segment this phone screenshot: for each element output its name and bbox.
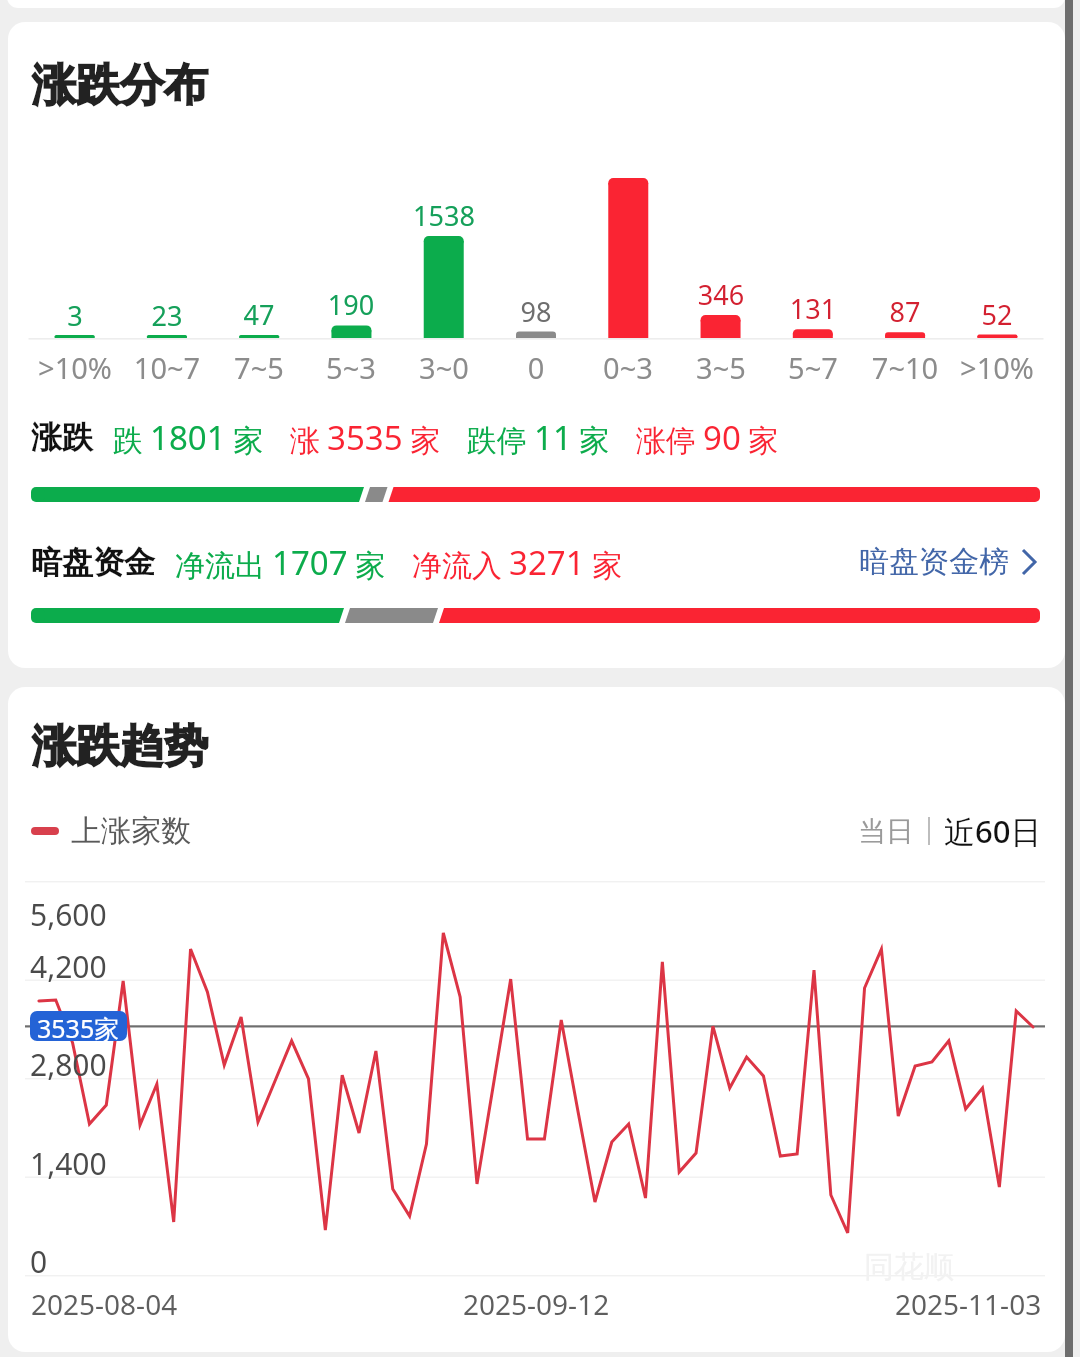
staticText: 23 — [107, 297, 227, 334]
staticText: 家 — [592, 547, 622, 585]
staticText: 同花顺 — [864, 1248, 954, 1286]
staticText: 涨停 — [636, 422, 696, 460]
staticText: 涨跌分布 — [32, 58, 208, 113]
staticText: 0 — [476, 348, 596, 387]
staticText: 90 — [703, 415, 741, 460]
staticText: 0 — [30, 1241, 48, 1282]
staticText: 涨跌 — [31, 418, 93, 457]
staticText: 家 — [355, 547, 385, 585]
staticText: 346 — [661, 276, 781, 313]
staticText: 1538 — [384, 197, 504, 234]
staticText: 暗盘资金 — [31, 543, 155, 582]
staticText: 11 — [534, 415, 572, 460]
staticText: 3535 — [327, 415, 403, 460]
staticText: 当日 — [858, 814, 914, 849]
staticText: 0~3 — [568, 348, 688, 387]
staticText: >10% — [15, 348, 135, 387]
staticText: 98 — [476, 293, 596, 330]
staticText: 52 — [937, 296, 1057, 333]
staticText: 家 — [579, 422, 609, 460]
staticText: 家 — [748, 422, 778, 460]
staticText: 3535家 — [37, 1011, 120, 1041]
staticText: 7~10 — [845, 348, 965, 387]
staticText: 1707 — [272, 540, 348, 585]
staticText: 上涨家数 — [71, 812, 191, 850]
staticText: 跌停 — [467, 422, 527, 460]
button[interactable]: 近60日 — [944, 810, 1042, 852]
staticText: 暗盘资金榜 — [859, 543, 1009, 581]
staticText: 190 — [291, 286, 411, 323]
staticText: 净流入 — [412, 547, 502, 585]
staticText: 涨跌趋势 — [32, 719, 208, 774]
staticText: 4,200 — [30, 946, 107, 987]
staticText: 5,600 — [30, 894, 107, 935]
staticText: 净流出 — [175, 547, 265, 585]
staticText: 2025-08-04 — [31, 1285, 178, 1323]
staticText: 87 — [845, 293, 965, 330]
button[interactable]: 当日 — [858, 814, 914, 849]
staticText: 家 — [233, 422, 263, 460]
staticText: 5~3 — [291, 348, 411, 387]
staticText: >10% — [937, 348, 1057, 387]
staticText: 47 — [199, 296, 319, 333]
staticText: 家 — [410, 422, 440, 460]
staticText: 1801 — [150, 415, 226, 460]
staticText: 3271 — [509, 540, 585, 585]
staticText: 近60日 — [944, 810, 1042, 852]
staticText: 涨 — [290, 422, 320, 460]
staticText: 10~7 — [107, 348, 227, 387]
staticText: 1,400 — [30, 1143, 107, 1184]
staticText: 131 — [753, 290, 873, 327]
staticText: 3~0 — [384, 348, 504, 387]
staticText: 2,800 — [30, 1044, 107, 1085]
staticText: 5~7 — [753, 348, 873, 387]
staticText: 跌 — [113, 422, 143, 460]
button[interactable]: 暗盘资金榜 — [859, 543, 1036, 581]
staticText: 2025-09-12 — [463, 1285, 610, 1323]
staticText: 3 — [15, 297, 135, 334]
staticText: 3~5 — [661, 348, 781, 387]
staticText: 7~5 — [199, 348, 319, 387]
staticText: 2025-11-03 — [895, 1285, 1042, 1323]
